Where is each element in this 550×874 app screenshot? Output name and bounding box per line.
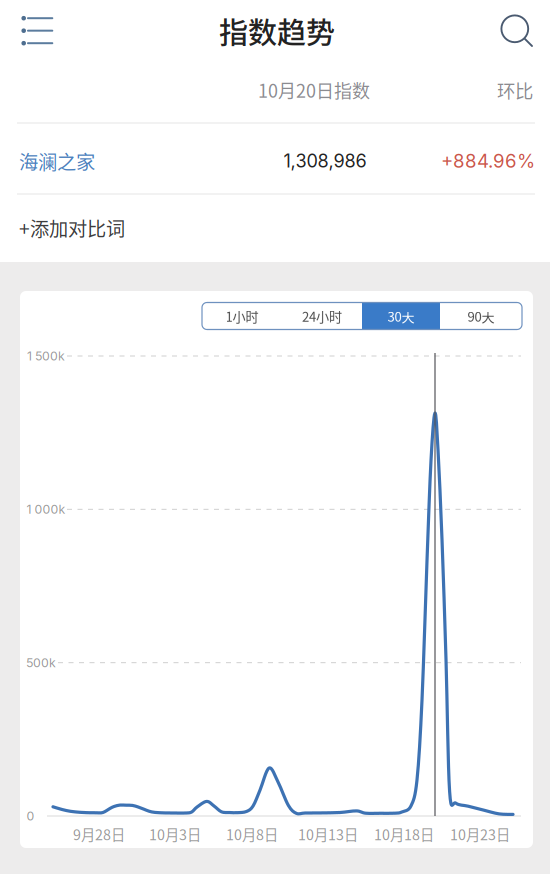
staticText: 10月8日 bbox=[226, 824, 278, 844]
staticText: 30天 bbox=[387, 306, 414, 325]
staticText: 10月18日 bbox=[374, 824, 434, 844]
staticText: 10月13日 bbox=[298, 824, 358, 844]
button[interactable]: 24小时 bbox=[282, 302, 362, 329]
button[interactable]: Compare list bbox=[1, 0, 73, 62]
staticText: 1,308,986 bbox=[283, 150, 366, 172]
button[interactable]: 90天 bbox=[440, 302, 522, 329]
staticText: 500k bbox=[26, 655, 56, 670]
staticText: 海澜之家 bbox=[19, 147, 95, 175]
staticText: 10月20日指数 bbox=[258, 77, 370, 103]
staticText: 0 bbox=[26, 809, 34, 823]
staticText: 1 000k bbox=[26, 502, 65, 517]
staticText: +884.96% bbox=[441, 150, 535, 172]
staticText: 1小时 bbox=[225, 306, 258, 325]
button[interactable]: 30天 bbox=[362, 302, 440, 329]
staticText: 24小时 bbox=[302, 306, 342, 325]
staticText: 10月23日 bbox=[450, 824, 510, 844]
staticText: 10月3日 bbox=[149, 824, 201, 844]
staticText: 环比 bbox=[497, 77, 533, 103]
staticText: 指数趋势 bbox=[219, 10, 335, 52]
staticText: 90天 bbox=[467, 306, 494, 325]
staticText: 9月28日 bbox=[73, 824, 125, 844]
staticText: +添加对比词 bbox=[19, 214, 125, 242]
staticText: 1 500k bbox=[27, 349, 65, 363]
button[interactable]: Search bbox=[489, 0, 545, 62]
button[interactable]: +添加对比词 bbox=[0, 194, 550, 261]
button[interactable]: 1小时 bbox=[202, 302, 282, 329]
